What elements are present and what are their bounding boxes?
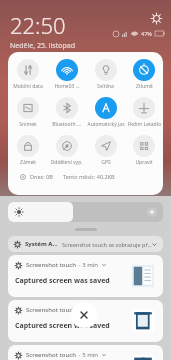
staticText: · 5 min: [79, 351, 99, 359]
staticText: Screenshot touch se zobrazuje pře…: [62, 241, 152, 248]
button[interactable]: Systém A…: [8, 236, 163, 252]
staticText: Neděle, 25. listopad: [10, 41, 75, 51]
button[interactable]: Oddělení vyp.: [47, 132, 86, 169]
staticText: · 1: [79, 306, 86, 314]
button[interactable]: Brightness: [8, 202, 163, 222]
staticText: · 3 min: [79, 261, 99, 269]
staticText: Zámek: [20, 159, 36, 166]
button[interactable]: Screenshot touch: [8, 255, 163, 297]
button[interactable]: Svítilna: [86, 56, 125, 93]
staticText: Tento měsíc: 40.2KB: [63, 173, 115, 180]
staticText: Svítilna: [97, 83, 114, 90]
staticText: Ztlumit: [136, 83, 153, 90]
staticText: 22:50: [10, 10, 66, 40]
staticText: Oddělení vyp.: [50, 159, 83, 166]
button[interactable]: Close: [71, 302, 97, 328]
staticText: Home03 …: [54, 83, 80, 90]
staticText: Režim Letadlo: [128, 121, 161, 128]
staticText: Bluetooth …: [52, 121, 81, 128]
staticText: Systém A…: [25, 240, 58, 248]
button[interactable]: Zámek: [8, 132, 47, 169]
staticText: Captured screen was saved: [15, 276, 110, 286]
button[interactable]: Automatický jas: [86, 94, 125, 131]
button[interactable]: Settings: [148, 10, 164, 26]
staticText: Screenshot touch: [26, 306, 76, 314]
staticText: Upravit: [135, 159, 153, 166]
staticText: Automatický jas: [87, 121, 125, 128]
staticText: Screenshot touch: [26, 351, 76, 359]
button[interactable]: Bluetooth …: [47, 94, 86, 131]
staticText: Snímek: [19, 121, 37, 128]
staticText: Mobilní data: [13, 83, 43, 90]
button[interactable]: Snímek: [8, 94, 47, 131]
button[interactable]: Mobilní data: [8, 56, 47, 93]
button[interactable]: Režim Letadlo: [125, 94, 163, 131]
button[interactable]: Ztlumit: [125, 56, 163, 93]
button[interactable]: Home03 …: [47, 56, 86, 93]
staticText: Captured screen was saved: [15, 321, 110, 331]
button[interactable]: Screenshot touch: [8, 300, 163, 342]
button[interactable]: Upravit: [125, 132, 163, 169]
staticText: Screenshot touch: [26, 261, 76, 269]
button[interactable]: Screenshot touch: [8, 345, 163, 360]
staticText: GPS: [101, 159, 111, 166]
button[interactable]: GPS: [86, 132, 125, 169]
staticText: Dnes: 0B: [30, 173, 53, 180]
staticText: 47%: [141, 30, 152, 37]
